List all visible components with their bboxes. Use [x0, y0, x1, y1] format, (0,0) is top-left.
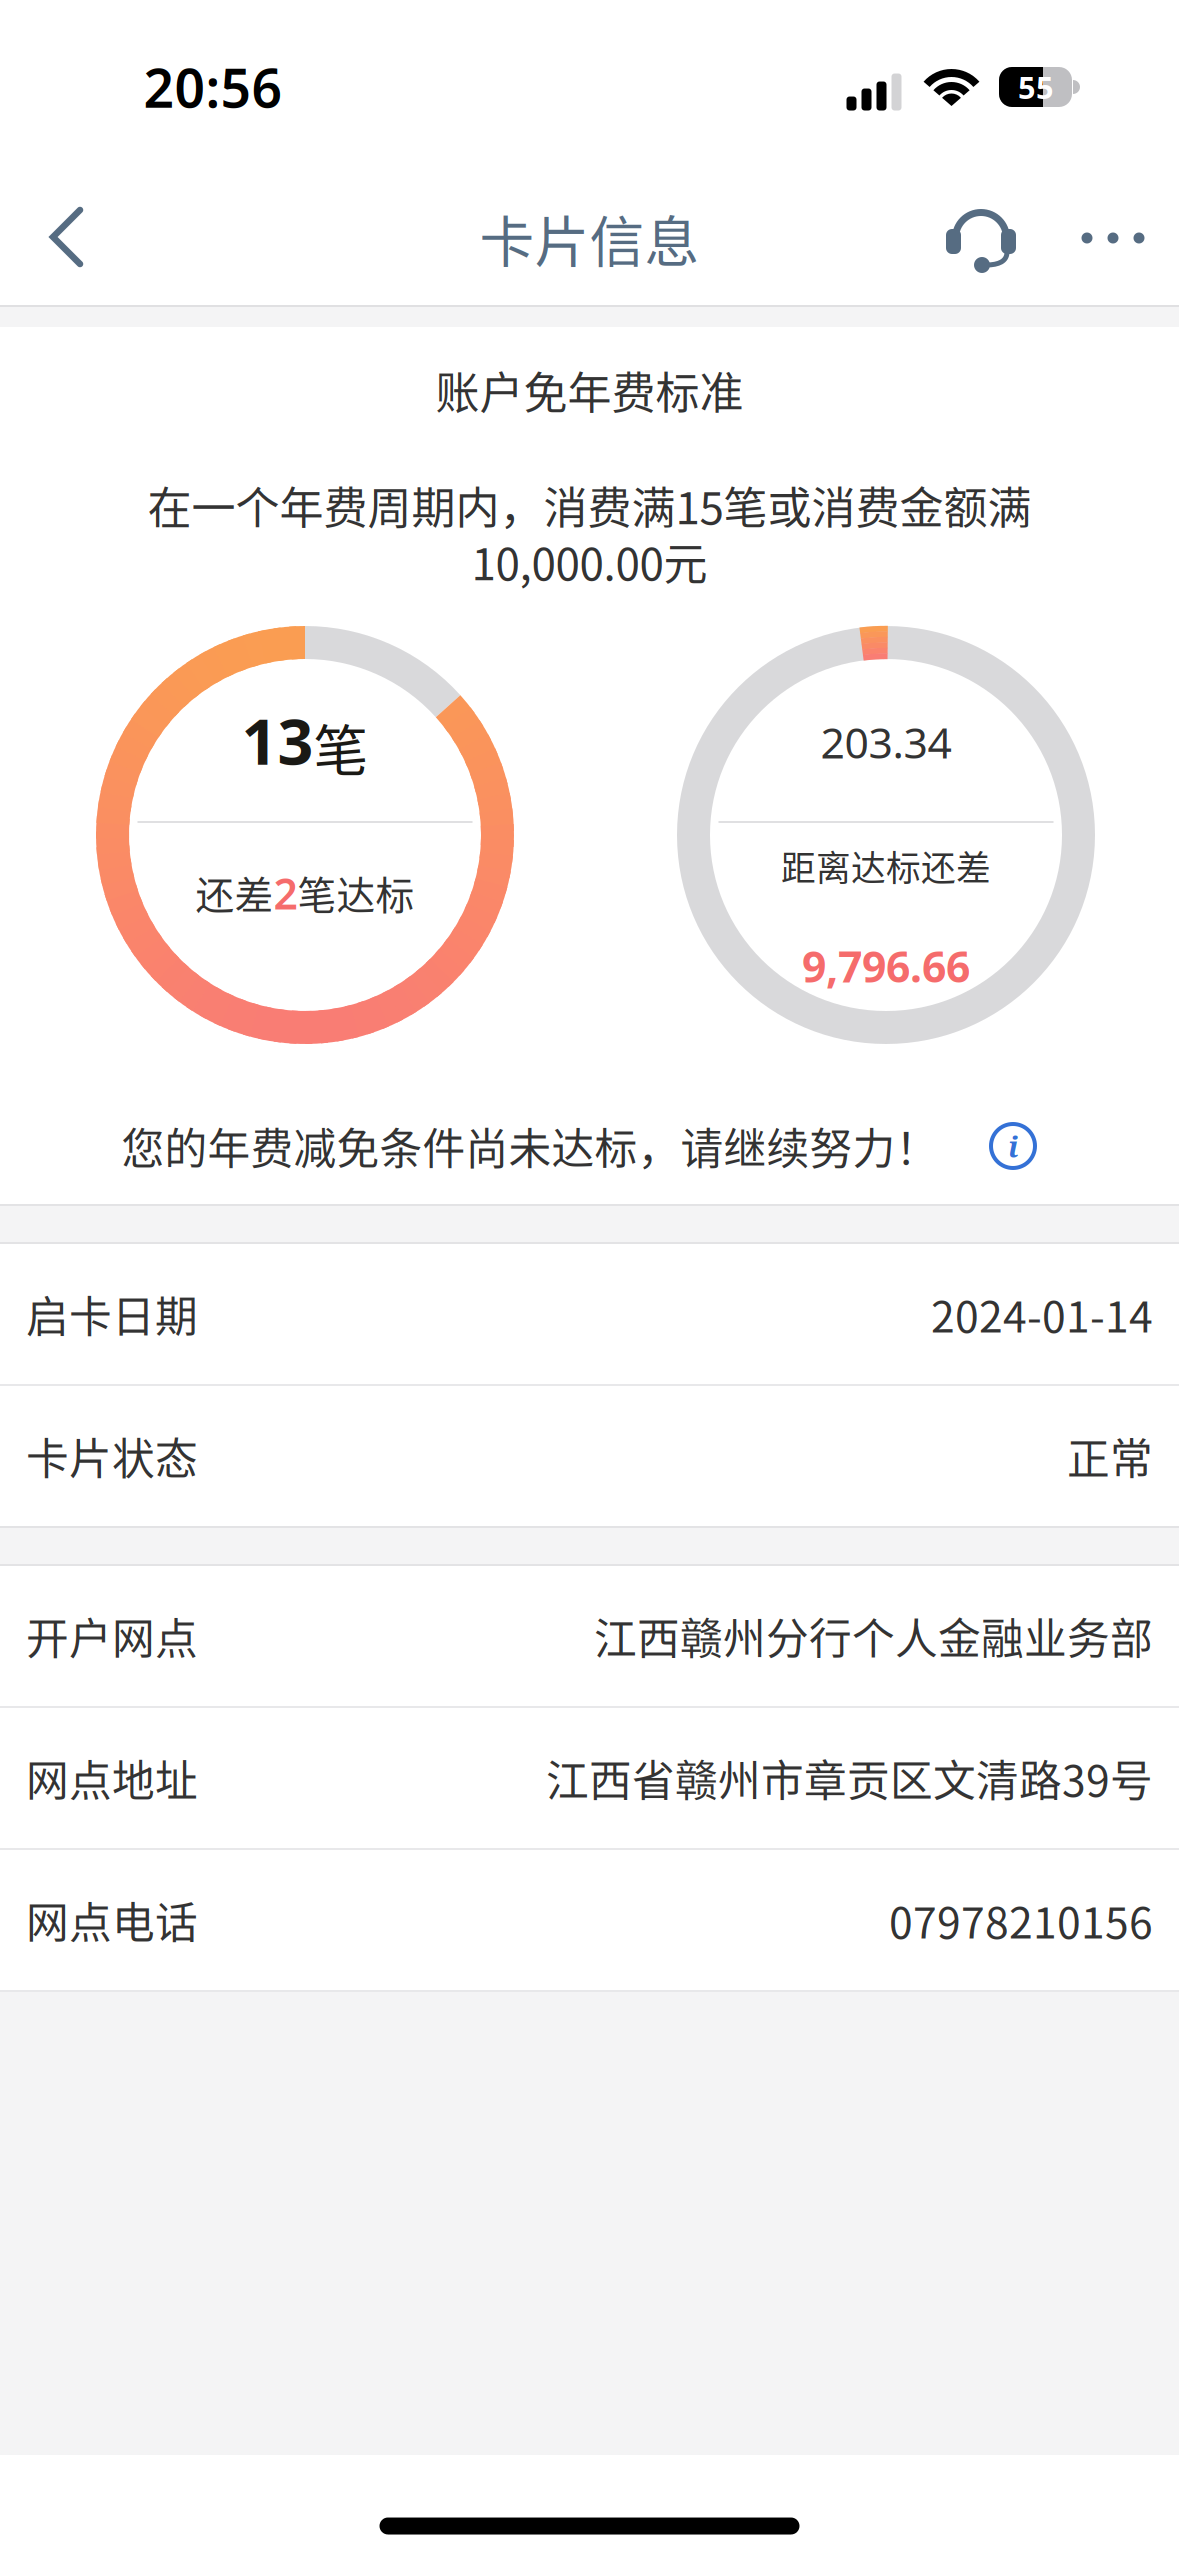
staticText: 还差 — [195, 865, 273, 921]
staticText: 您的年费减免条件尚未达标，请继续努力！ — [121, 1115, 938, 1177]
button[interactable]: Back — [34, 193, 98, 281]
staticText: 13笔 — [241, 699, 368, 785]
staticText: 网点电话 — [26, 1889, 198, 1951]
staticText: 2 — [273, 865, 297, 921]
staticText: 卡片信息 — [479, 198, 699, 278]
staticText: 江西赣州分行个人金融业务部 — [594, 1605, 1153, 1667]
staticText: 10,000.00元 — [471, 529, 707, 593]
staticText: 账户免年费标准 — [435, 358, 743, 422]
staticText: 55 — [1018, 67, 1054, 107]
staticText: 距离达标还差 — [781, 841, 991, 891]
staticText: 正常 — [1067, 1425, 1153, 1487]
staticText: 开户网点 — [26, 1605, 198, 1667]
button[interactable]: Info — [990, 1123, 1036, 1169]
staticText: i — [1008, 1126, 1018, 1166]
button[interactable]: More — [1071, 222, 1154, 253]
staticText: 07978210156 — [889, 1889, 1153, 1951]
staticText: 笔达标 — [297, 865, 414, 921]
staticText: 9,796.66 — [802, 938, 970, 994]
staticText: 启卡日期 — [26, 1283, 198, 1345]
staticText: 2024-01-14 — [931, 1283, 1153, 1345]
staticText: 江西省赣州市章贡区文清路39号 — [546, 1747, 1153, 1809]
staticText: 20:56 — [143, 52, 282, 122]
staticText: 卡片状态 — [26, 1425, 198, 1487]
staticText: 203.34 — [820, 714, 951, 770]
button[interactable]: Customer service — [938, 194, 1024, 280]
staticText: 网点地址 — [26, 1747, 198, 1809]
staticText: 在一个年费周期内，消费满15笔或消费金额满 — [147, 473, 1031, 537]
